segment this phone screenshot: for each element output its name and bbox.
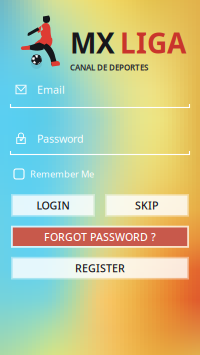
- staticText: LOGIN: [36, 198, 69, 212]
- staticText: MX: [70, 24, 115, 61]
- staticText: Password: [37, 131, 84, 146]
- staticText: Email: [37, 82, 65, 97]
- staticText: LIGA: [120, 24, 186, 61]
- staticText: FORGOT PASSWORD ?: [44, 230, 156, 244]
- button[interactable]: REGISTER: [11, 257, 189, 279]
- button[interactable]: Remember Me: [0, 167, 200, 181]
- staticText: Remember Me: [30, 168, 94, 180]
- staticText: REGISTER: [75, 261, 125, 275]
- button[interactable]: FORGOT PASSWORD ?: [11, 226, 189, 248]
- staticText: SKIP: [135, 198, 159, 212]
- button[interactable]: LOGIN: [11, 194, 95, 217]
- button[interactable]: SKIP: [105, 194, 189, 217]
- staticText: CANAL DE DEPORTES: [70, 62, 148, 73]
